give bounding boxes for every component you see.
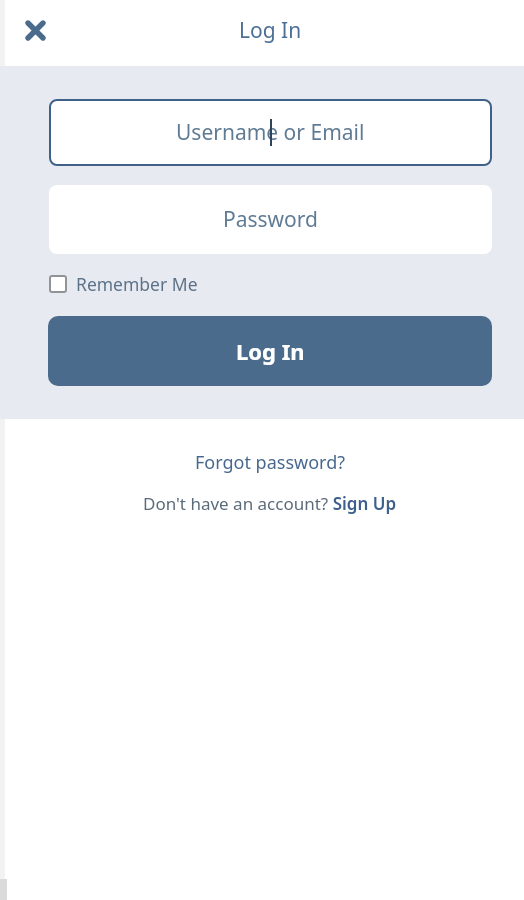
button[interactable] bbox=[15, 10, 55, 50]
button[interactable]: Password bbox=[49, 185, 492, 254]
button[interactable]: Don't have an account? Sign Up bbox=[0, 491, 524, 515]
staticText: Password bbox=[223, 205, 318, 234]
button[interactable]: Log In bbox=[48, 316, 492, 386]
button[interactable]: Username or Email bbox=[49, 99, 492, 166]
staticText: Log In bbox=[239, 16, 302, 45]
staticText: Don't have an account? Sign Up bbox=[143, 492, 397, 515]
staticText: Remember Me bbox=[76, 272, 198, 296]
button[interactable]: Remember Me bbox=[49, 272, 198, 296]
staticText: Username or Email bbox=[176, 118, 365, 147]
staticText: Forgot password? bbox=[195, 450, 346, 474]
button[interactable]: Forgot password? bbox=[0, 450, 524, 474]
staticText: Log In bbox=[236, 336, 305, 366]
